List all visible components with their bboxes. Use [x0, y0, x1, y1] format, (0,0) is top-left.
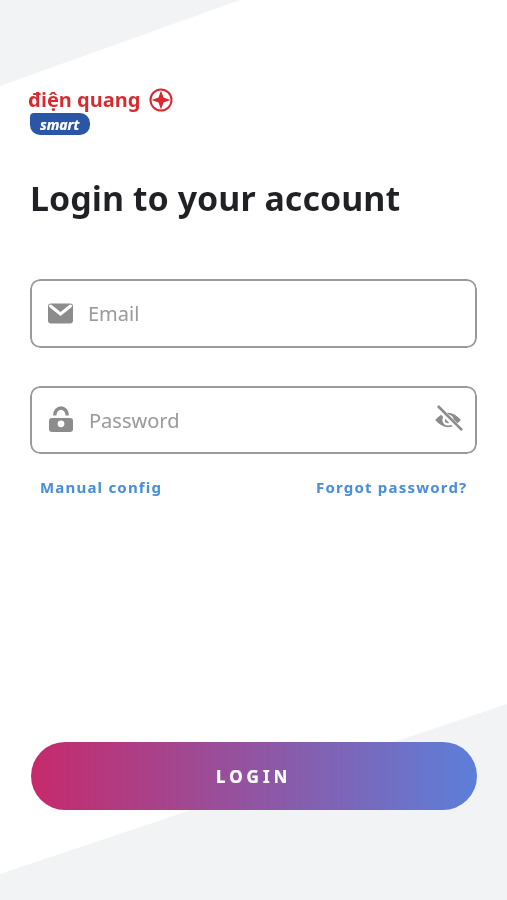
staticText: smart	[40, 115, 80, 134]
staticText: LOGIN	[216, 765, 292, 788]
button[interactable]: Password	[30, 386, 477, 454]
button[interactable]	[434, 406, 462, 434]
staticText: Email	[88, 300, 140, 327]
staticText: điện quang	[28, 86, 141, 113]
button[interactable]: Manual config	[40, 477, 163, 497]
staticText: Login to your account	[30, 175, 401, 221]
staticText: Password	[89, 407, 180, 434]
staticText: Forgot password?	[316, 477, 468, 497]
button[interactable]: LOGIN	[31, 742, 477, 810]
staticText: Manual config	[40, 477, 163, 497]
button[interactable]: Email	[30, 279, 477, 348]
button[interactable]: Forgot password?	[316, 477, 468, 497]
